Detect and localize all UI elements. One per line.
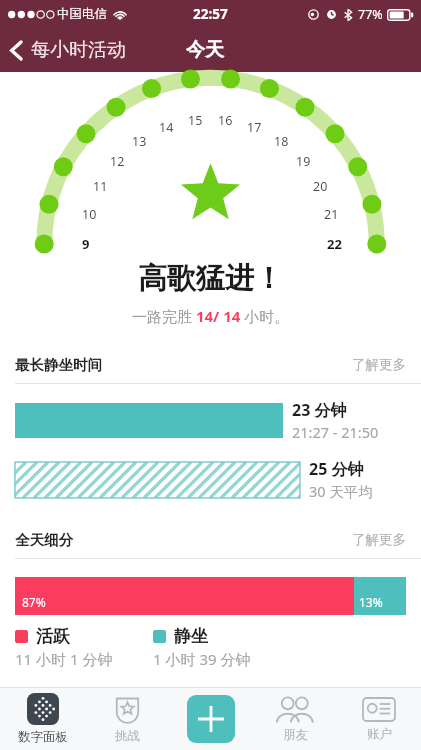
other: 返回 (10, 40, 23, 61)
staticText: 9 (82, 235, 90, 253)
staticText: 16 (218, 112, 233, 129)
button[interactable]: 返回 (0, 32, 138, 68)
staticText: 了解更多 (352, 531, 406, 548)
staticText: 23 分钟 (292, 399, 347, 421)
button[interactable]: 挑战 (85, 688, 169, 750)
staticText: 22 (327, 235, 342, 253)
staticText: 30 天平均 (309, 481, 373, 501)
staticText: 最长静坐时间 (15, 356, 102, 374)
button[interactable]: 朋友 (253, 688, 337, 750)
staticText: 了解更多 (352, 356, 406, 373)
staticText: 12 (110, 153, 125, 170)
staticText: 11 小时 1 分钟 (15, 649, 113, 669)
staticText: 中国电信 (57, 6, 107, 22)
staticText: 17 (247, 119, 262, 136)
staticText: 每小时活动 (31, 38, 126, 62)
staticText: 19 (296, 153, 311, 170)
staticText: 全天细分 (15, 531, 73, 549)
staticText: 21:27 - 21:50 (292, 422, 379, 442)
button[interactable]: 了解更多 (348, 352, 410, 377)
button[interactable]: 添加 (169, 688, 253, 750)
button[interactable]: 了解更多 (348, 527, 410, 552)
staticText: 21 (324, 206, 339, 223)
staticText: 13% (359, 594, 383, 610)
staticText: 账户 (367, 726, 392, 742)
staticText: 活跃 (36, 626, 70, 647)
button[interactable]: 数字面板 (0, 688, 85, 750)
staticText: 11 (93, 178, 108, 195)
staticText: 10 (82, 206, 97, 223)
staticText: 77% (358, 6, 383, 23)
button[interactable]: 账户 (337, 688, 421, 750)
staticText: 1 小时 39 分钟 (153, 649, 251, 669)
staticText: 25 分钟 (309, 458, 364, 480)
staticText: 18 (274, 133, 289, 150)
staticText: 数字面板 (18, 729, 68, 745)
staticText: 朋友 (283, 727, 308, 743)
staticText: 15 (188, 112, 203, 129)
staticText: 高歌猛进！ (138, 260, 283, 297)
staticText: 一路完胜 14/ 14 小时。 (132, 306, 290, 326)
staticText: 挑战 (115, 728, 140, 744)
staticText: 13 (132, 133, 147, 150)
staticText: 今天 (186, 38, 224, 62)
staticText: 14 (159, 119, 174, 136)
staticText: 20 (313, 178, 328, 195)
staticText: 87% (22, 594, 46, 610)
staticText: 静坐 (174, 626, 208, 647)
staticText: 22:57 (193, 5, 228, 23)
button[interactable]: 今天 (180, 32, 230, 68)
